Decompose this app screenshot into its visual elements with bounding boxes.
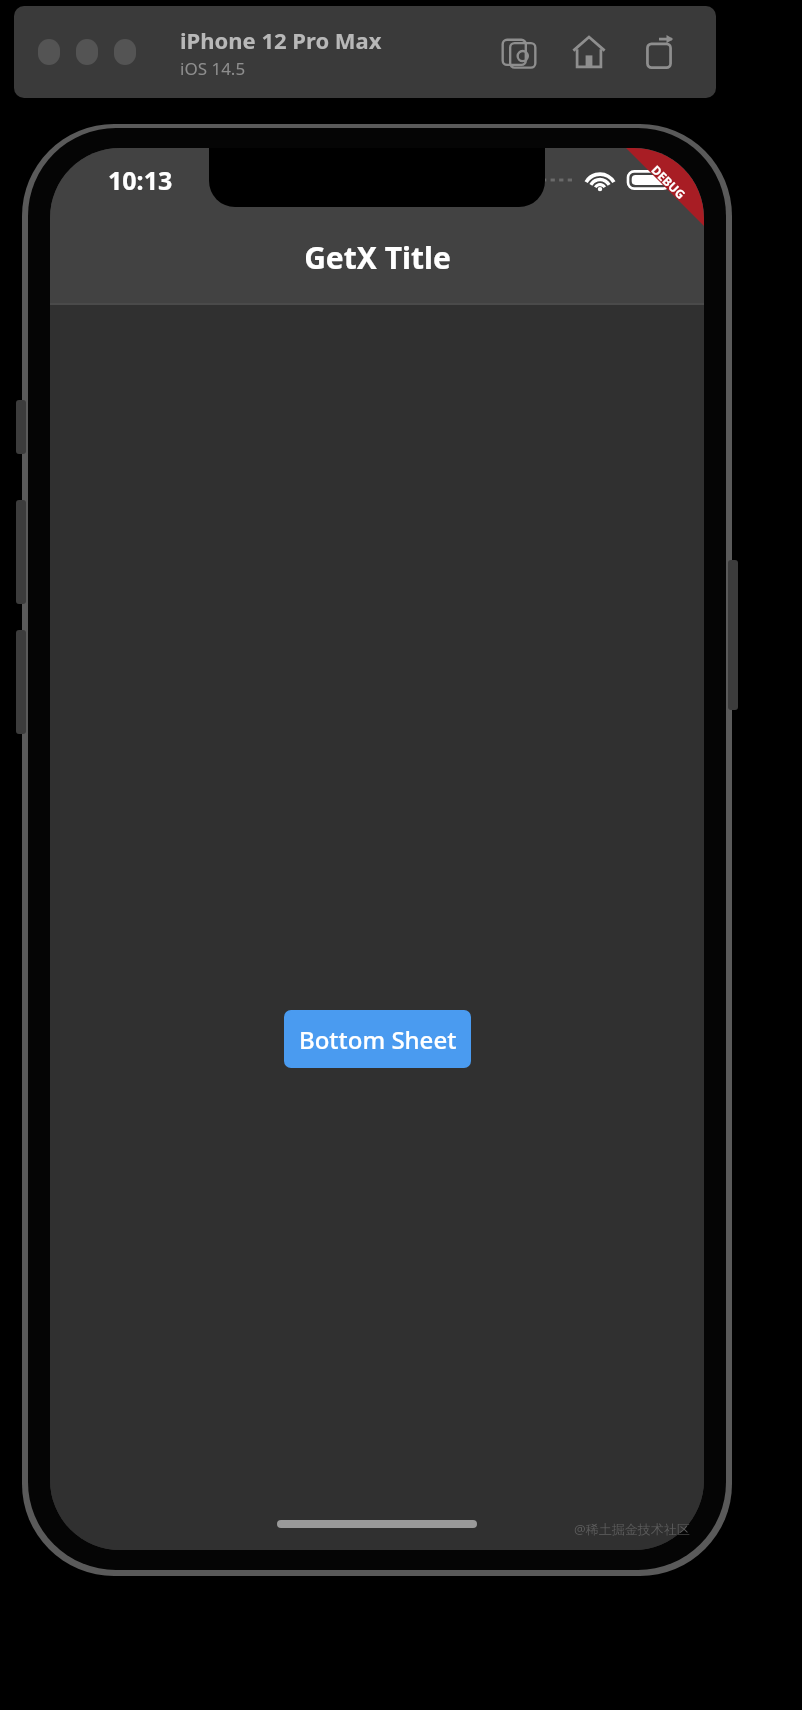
button[interactable]: Window control 2: [114, 39, 136, 65]
button[interactable]: Rotate: [632, 25, 686, 79]
staticText: iOS 14.5: [180, 57, 246, 80]
staticText: iPhone 12 Pro Max: [180, 25, 382, 55]
button[interactable]: Window control 0: [38, 39, 60, 65]
staticText: 10:13: [108, 163, 173, 197]
staticText: GetX Title: [304, 237, 451, 278]
button[interactable]: Home: [562, 25, 616, 79]
staticText: Bottom Sheet: [299, 1023, 457, 1056]
button[interactable]: Screenshot: [492, 25, 546, 79]
button[interactable]: Bottom Sheet: [284, 1010, 471, 1068]
staticText: DEBUG: [648, 161, 689, 202]
button[interactable]: Window control 1: [76, 39, 98, 65]
staticText: @稀土掘金技术社区: [574, 1520, 690, 1538]
